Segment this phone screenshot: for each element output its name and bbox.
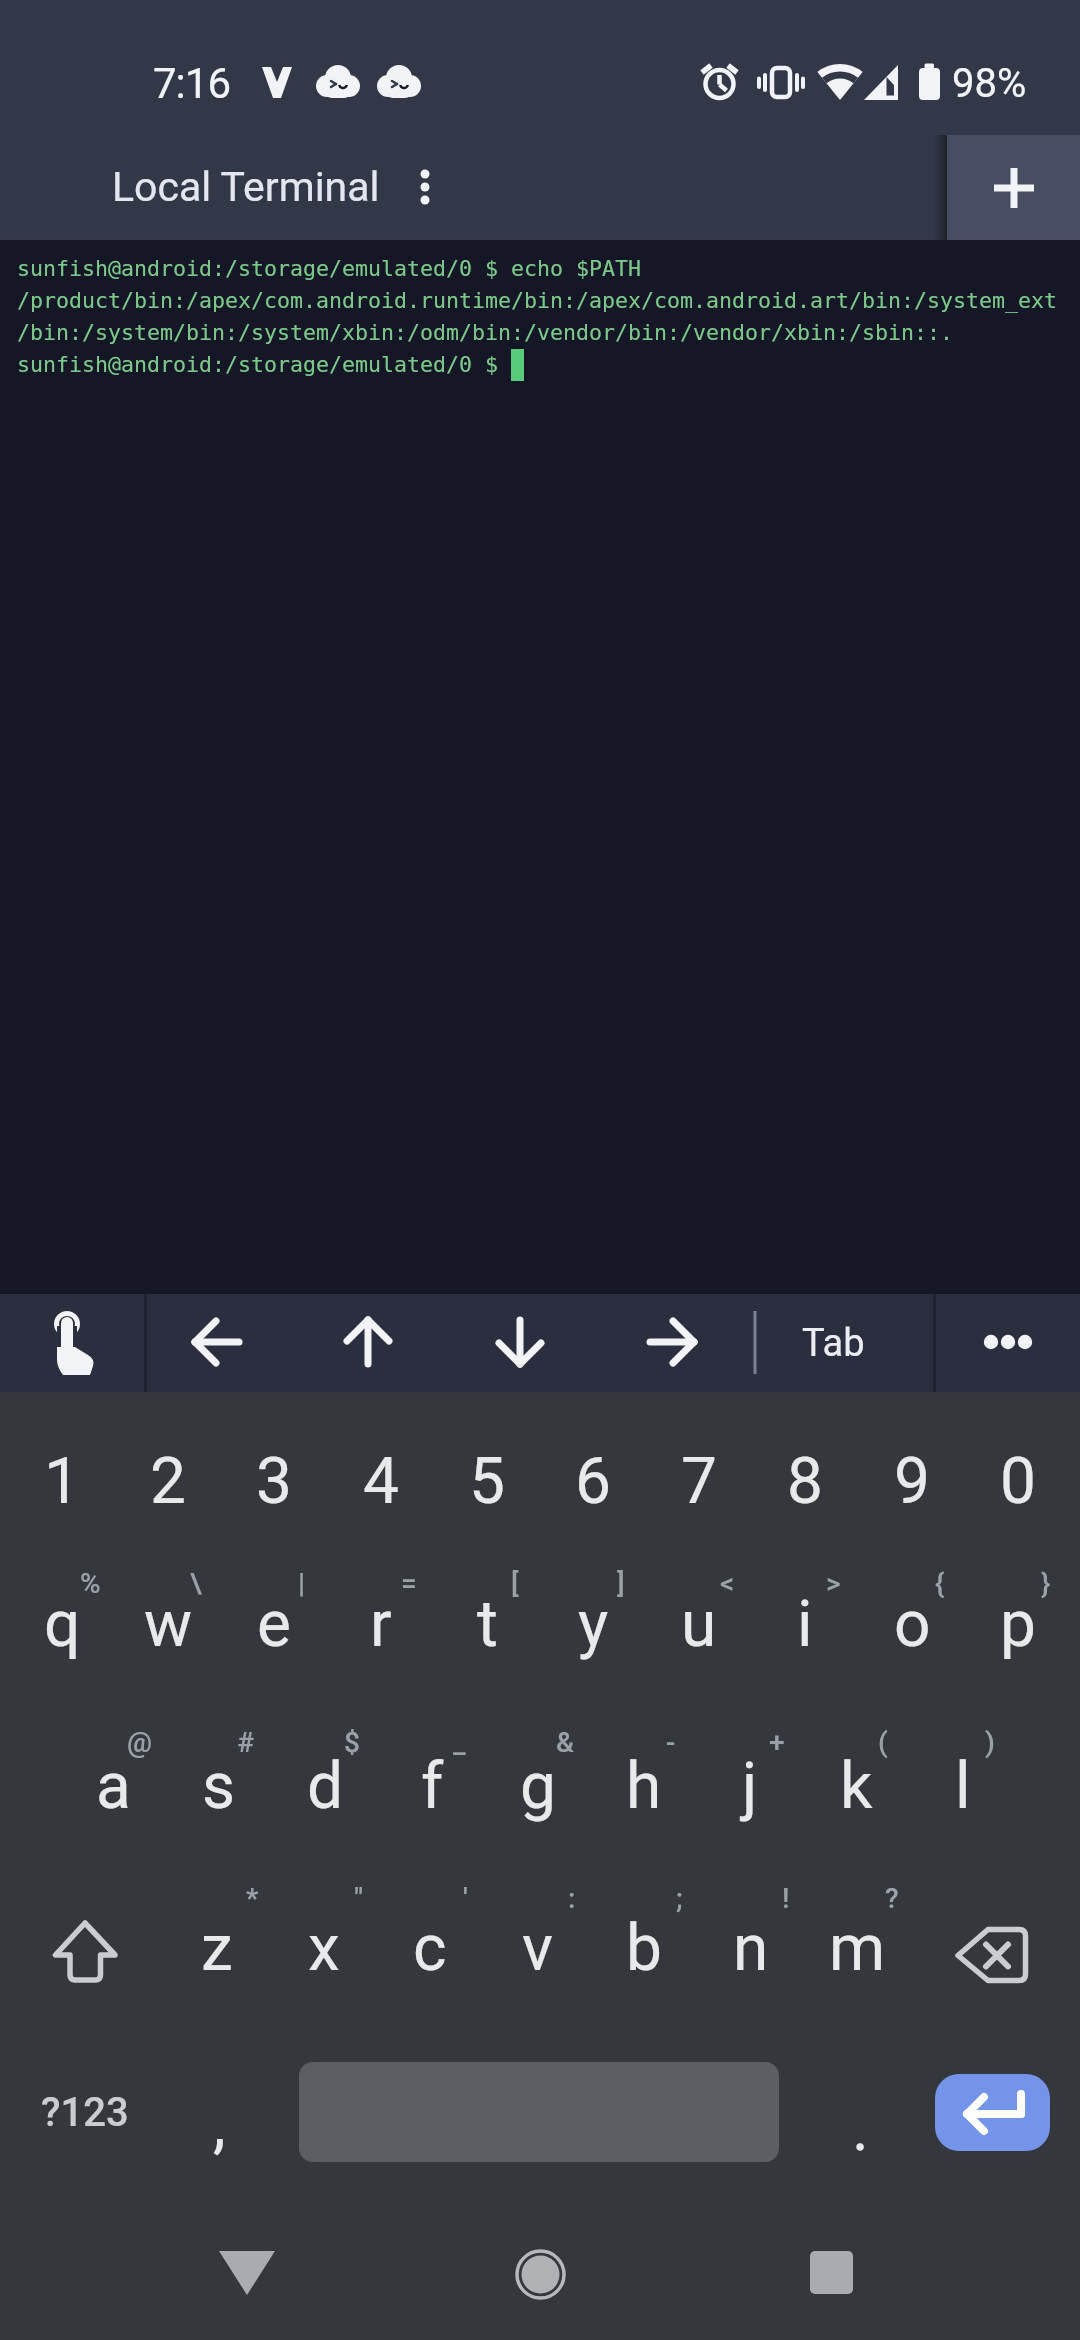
button[interactable]: 2	[116, 1411, 220, 1551]
staticText: 0	[1000, 1444, 1036, 1519]
staticText: 3	[256, 1444, 292, 1519]
staticText: p	[1000, 1587, 1036, 1662]
button[interactable]	[947, 135, 1080, 240]
button[interactable]: l	[911, 1711, 1015, 1861]
button[interactable]: r	[329, 1549, 433, 1699]
button[interactable]: c	[378, 1873, 482, 2023]
button[interactable]	[485, 2230, 595, 2320]
staticText: 9	[894, 1444, 930, 1519]
button[interactable]: x	[272, 1873, 376, 2023]
button[interactable]	[147, 1294, 293, 1392]
button[interactable]: o	[860, 1549, 964, 1699]
button[interactable]: y	[541, 1549, 645, 1699]
button[interactable]: p	[966, 1549, 1070, 1699]
button[interactable]: 4	[329, 1411, 433, 1551]
button[interactable]: 7	[647, 1411, 751, 1551]
staticText: Local Terminal	[112, 163, 380, 211]
staticText: Tab	[802, 1321, 865, 1366]
staticText: t	[477, 1587, 498, 1662]
button[interactable]	[0, 1294, 145, 1392]
button[interactable]	[380, 140, 470, 235]
button[interactable]: 1	[10, 1411, 114, 1551]
staticText: [	[511, 1567, 519, 1600]
button[interactable]: g	[486, 1711, 590, 1861]
staticText: n	[733, 1911, 769, 1986]
button[interactable]: h	[592, 1711, 696, 1861]
staticText: x	[308, 1911, 340, 1986]
button[interactable]: 8	[753, 1411, 857, 1551]
button[interactable]: e	[222, 1549, 326, 1699]
button[interactable]	[928, 1880, 1058, 2020]
staticText: 7:16	[153, 59, 230, 108]
staticText: 6	[575, 1444, 611, 1519]
staticText: g	[520, 1749, 556, 1824]
button[interactable]	[777, 2230, 887, 2320]
button[interactable]: 0	[966, 1411, 1070, 1551]
button[interactable]: 3	[222, 1411, 326, 1551]
button[interactable]	[445, 1294, 597, 1392]
button[interactable]: u	[647, 1549, 751, 1699]
button[interactable]	[293, 1294, 445, 1392]
button[interactable]: 9	[860, 1411, 964, 1551]
staticText: ,	[213, 2087, 226, 2162]
button[interactable]: a	[61, 1711, 165, 1861]
staticText: *	[246, 1882, 259, 1915]
staticText: ?	[885, 1882, 899, 1915]
button[interactable]: d	[273, 1711, 377, 1861]
staticText: @	[127, 1726, 153, 1759]
staticText: 7	[681, 1444, 717, 1519]
button[interactable]: 6	[541, 1411, 645, 1551]
staticText: d	[307, 1749, 344, 1824]
staticText: v	[522, 1911, 553, 1986]
button[interactable]: t	[435, 1549, 539, 1699]
staticText: h	[626, 1749, 662, 1824]
staticText: $	[344, 1726, 360, 1759]
staticText: f	[421, 1749, 444, 1824]
staticText: k	[840, 1749, 873, 1824]
button[interactable]: n	[699, 1873, 803, 2023]
staticText: >	[826, 1567, 841, 1600]
staticText: ?123	[41, 2089, 129, 2136]
button[interactable]	[597, 1294, 749, 1392]
button[interactable]: j	[698, 1711, 802, 1861]
button[interactable]: v	[485, 1873, 589, 2023]
staticText: w	[144, 1587, 193, 1662]
staticText: &	[556, 1726, 574, 1759]
staticText: e	[257, 1587, 291, 1662]
button[interactable]: b	[592, 1873, 696, 2023]
button[interactable]: 5	[435, 1411, 539, 1551]
staticText: (	[878, 1726, 888, 1759]
staticText: /bin:/system/bin:/system/xbin:/odm/bin:/…	[17, 320, 954, 345]
button[interactable]: Tab	[743, 1294, 923, 1392]
button[interactable]: w	[116, 1549, 220, 1699]
button[interactable]: ,	[169, 2054, 269, 2194]
staticText: "	[354, 1882, 364, 1915]
button[interactable]: ?123	[10, 2042, 160, 2182]
staticText: u	[681, 1587, 717, 1662]
staticText: s	[202, 1749, 236, 1824]
staticText: 98%	[952, 60, 1027, 107]
button[interactable]: q	[10, 1549, 114, 1699]
button[interactable]: s	[167, 1711, 271, 1861]
button[interactable]: i	[753, 1549, 857, 1699]
staticText: 2	[150, 1444, 186, 1519]
staticText: a	[96, 1749, 131, 1824]
button[interactable]: k	[804, 1711, 908, 1861]
button[interactable]: m	[805, 1873, 909, 2023]
button[interactable]	[936, 1294, 1080, 1392]
staticText: 4	[363, 1444, 399, 1519]
staticText: \	[190, 1567, 202, 1600]
button[interactable]	[935, 2074, 1050, 2151]
staticText: 8	[787, 1444, 823, 1519]
button[interactable]: .	[810, 2058, 910, 2198]
staticText: o	[894, 1587, 931, 1662]
button[interactable]: f	[380, 1711, 484, 1861]
staticText: '	[463, 1882, 468, 1915]
button[interactable]	[192, 2230, 302, 2320]
button[interactable]: z	[165, 1873, 269, 2023]
staticText: #	[237, 1726, 255, 1759]
staticText: b	[626, 1911, 662, 1986]
staticText: |	[298, 1567, 306, 1600]
button[interactable]	[20, 1880, 150, 2020]
